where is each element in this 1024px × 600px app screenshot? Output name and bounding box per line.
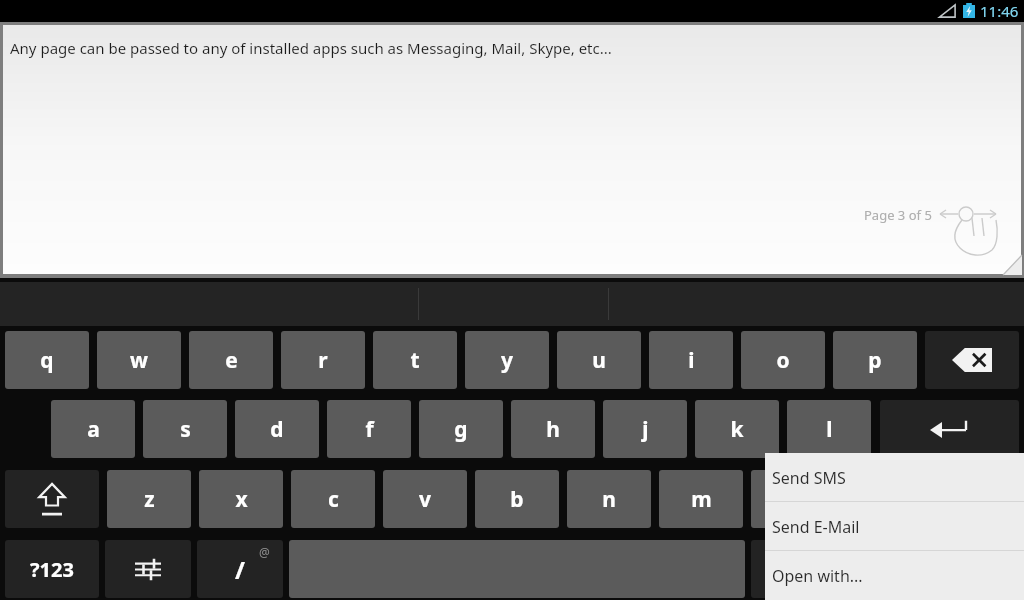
button[interactable] xyxy=(751,540,835,598)
staticText: t xyxy=(410,346,420,375)
button[interactable]: Enter xyxy=(880,400,1019,458)
button[interactable]: f xyxy=(327,400,411,458)
staticText: o xyxy=(776,346,790,375)
button[interactable]: r xyxy=(281,331,365,389)
staticText: z xyxy=(144,485,155,514)
staticText: f xyxy=(365,415,374,444)
staticText: i xyxy=(688,346,695,375)
button[interactable]: z xyxy=(107,470,191,528)
staticText: y xyxy=(501,346,513,375)
button[interactable] xyxy=(751,470,835,528)
staticText: Page 3 of 5 xyxy=(864,206,932,224)
button[interactable]: Send E-Mail xyxy=(765,502,1024,551)
staticText: ?123 xyxy=(30,556,74,583)
staticText: @ xyxy=(259,544,270,560)
button[interactable]: x xyxy=(199,470,283,528)
staticText: n xyxy=(602,485,616,514)
button[interactable]: p xyxy=(833,331,917,389)
staticText: h xyxy=(546,415,560,444)
button[interactable]: Input settings xyxy=(105,540,191,598)
staticText: Any page can be passed to any of install… xyxy=(10,38,612,58)
staticText: d xyxy=(270,415,284,444)
staticText: k xyxy=(730,415,744,444)
staticText: c xyxy=(328,485,339,514)
button[interactable] xyxy=(843,470,927,528)
staticText: w xyxy=(130,346,148,375)
button[interactable]: Symbols xyxy=(5,540,99,598)
staticText: / xyxy=(235,553,245,586)
button[interactable] xyxy=(3,25,1021,274)
staticText: j xyxy=(642,415,649,444)
staticText: m xyxy=(691,485,712,514)
staticText: r xyxy=(318,346,328,375)
button[interactable]: i xyxy=(649,331,733,389)
button[interactable]: q xyxy=(5,331,89,389)
button[interactable]: g xyxy=(419,400,503,458)
staticText: b xyxy=(510,485,524,514)
button[interactable]: e xyxy=(189,331,273,389)
button[interactable]: Backspace xyxy=(925,331,1019,389)
button[interactable]: y xyxy=(465,331,549,389)
button[interactable]: d xyxy=(235,400,319,458)
staticText: Send E-Mail xyxy=(772,516,860,538)
staticText: s xyxy=(180,415,191,444)
staticText: e xyxy=(225,346,238,375)
button[interactable]: l xyxy=(787,400,871,458)
button[interactable]: c xyxy=(291,470,375,528)
staticText: v xyxy=(419,485,431,514)
staticText: g xyxy=(454,415,468,444)
button[interactable]: Shift xyxy=(5,470,99,528)
staticText: q xyxy=(40,346,54,375)
staticText: u xyxy=(592,346,606,375)
button[interactable]: w xyxy=(97,331,181,389)
button[interactable]: b xyxy=(475,470,559,528)
staticText: a xyxy=(87,415,100,444)
staticText: 11:46 xyxy=(980,1,1019,21)
button[interactable]: Send SMS xyxy=(765,453,1024,502)
staticText: x xyxy=(235,485,248,514)
button[interactable]: o xyxy=(741,331,825,389)
button[interactable]: a xyxy=(51,400,135,458)
button[interactable]: k xyxy=(695,400,779,458)
button[interactable]: t xyxy=(373,331,457,389)
staticText: l xyxy=(826,415,833,444)
staticText: Send SMS xyxy=(772,467,846,489)
button[interactable]: j xyxy=(603,400,687,458)
button[interactable]: h xyxy=(511,400,595,458)
staticText: p xyxy=(868,346,882,375)
button[interactable]: s xyxy=(143,400,227,458)
button[interactable]: Open with... xyxy=(765,551,1024,600)
button[interactable]: Slash xyxy=(197,540,283,598)
button[interactable]: v xyxy=(383,470,467,528)
staticText: Open with... xyxy=(772,565,863,587)
button[interactable]: n xyxy=(567,470,651,528)
button[interactable]: u xyxy=(557,331,641,389)
button[interactable]: m xyxy=(659,470,743,528)
